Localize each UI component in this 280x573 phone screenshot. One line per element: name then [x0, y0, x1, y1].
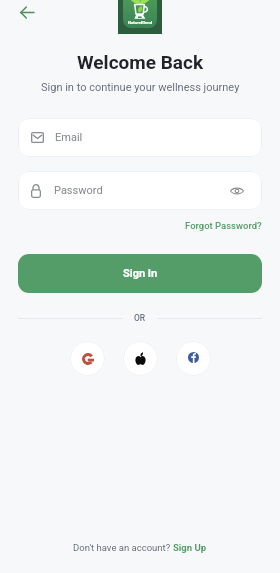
button[interactable]: Sign in with Google [70, 341, 105, 376]
staticText: NatureBlend [128, 20, 153, 25]
button[interactable]: Sign in with Facebook [176, 341, 211, 376]
staticText: Email [55, 131, 83, 144]
staticText: Forgot Password? [185, 220, 262, 231]
staticText: Password [54, 184, 103, 197]
button[interactable]: Back [11, 0, 43, 28]
button[interactable]: Sign in with Apple [123, 341, 158, 376]
staticText: OR [134, 313, 146, 323]
button[interactable]: Password [18, 171, 262, 210]
staticText: Sign Up [173, 542, 207, 553]
button[interactable]: Forgot Password? [185, 220, 262, 231]
staticText: Sign In [123, 267, 158, 280]
button[interactable]: Email [18, 118, 262, 157]
button[interactable]: Sign Up [173, 542, 207, 553]
staticText: Welcome Back [77, 51, 204, 73]
staticText: Don't have an account? [73, 542, 173, 553]
staticText: Sign in to continue your wellness journe… [41, 81, 240, 94]
button[interactable]: Sign In [18, 254, 262, 293]
